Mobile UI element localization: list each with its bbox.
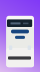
button[interactable] xyxy=(15,36,25,39)
button[interactable] xyxy=(11,30,29,33)
